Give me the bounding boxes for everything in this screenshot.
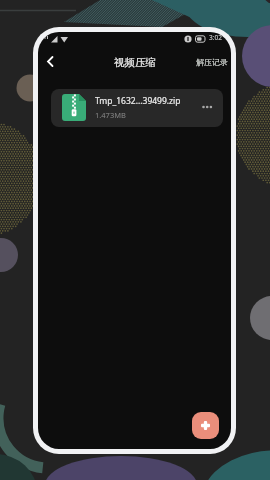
staticText: 3:02	[209, 33, 222, 42]
staticText: Tmp_1632...39499.zip	[95, 95, 181, 107]
button[interactable]	[192, 412, 219, 439]
staticText: 1.473MB	[95, 110, 126, 120]
button[interactable]	[200, 101, 214, 115]
button[interactable]: Tmp_1632...39499.zip	[51, 89, 223, 127]
button[interactable]	[42, 52, 60, 72]
staticText: 视频压缩	[114, 56, 156, 69]
button[interactable]: 解压记录	[196, 57, 228, 67]
staticText: 解压记录	[196, 57, 228, 67]
